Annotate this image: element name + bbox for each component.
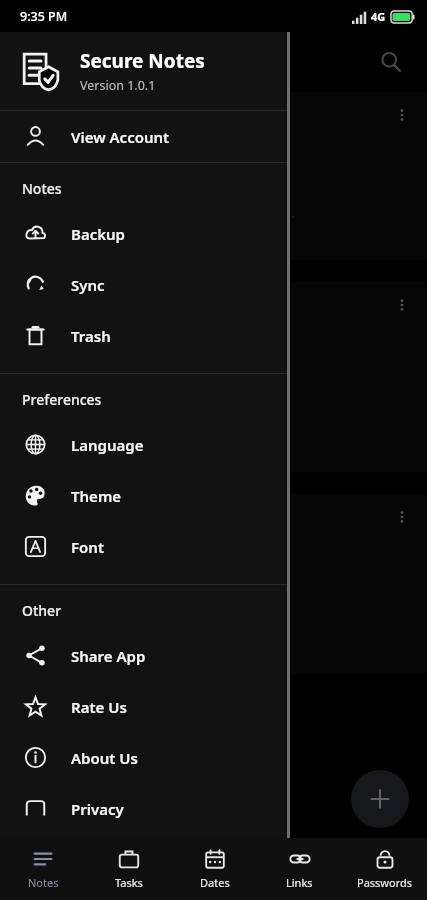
button[interactable]: Theme: [0, 470, 290, 521]
staticText: 9:35 PM: [20, 8, 68, 25]
staticText: reaction. Example: in an: [18, 376, 187, 396]
staticText: Version 1.0.1: [80, 77, 156, 94]
button[interactable]: Dates: [172, 838, 257, 900]
staticText: Passwords: [357, 875, 413, 890]
staticText: electrochemical consisting of: [18, 400, 223, 420]
button[interactable]: View Account: [0, 111, 290, 162]
button[interactable]: Trash: [0, 310, 290, 361]
staticText: Font: [71, 537, 104, 557]
staticText: Trash: [71, 326, 111, 346]
staticText: Privacy: [71, 799, 124, 819]
button[interactable]: Notes: [0, 838, 86, 900]
button[interactable]: Add note: [351, 770, 409, 828]
staticText: Backup: [71, 224, 125, 244]
staticText: Take a deep breath before you start so: [18, 138, 289, 158]
button[interactable]: Rate Us: [0, 681, 290, 732]
button[interactable]: Share App: [0, 630, 290, 681]
button[interactable]: Font: [0, 521, 290, 572]
staticText: Dates: [200, 875, 230, 890]
button[interactable]: Passwords: [342, 838, 427, 900]
button[interactable]: About Us: [0, 732, 290, 783]
staticText: Share App: [71, 646, 146, 666]
staticText: Notes: [22, 179, 62, 198]
staticText: Other: [22, 601, 62, 620]
staticText: A battery in which electric current is: [18, 328, 270, 348]
button[interactable]: Backup: [0, 208, 290, 259]
staticText: name Satoshi. The currency began: [18, 588, 262, 608]
staticText: the moment and whoever you are. Be…: [18, 202, 296, 222]
button[interactable]: More options: [0, 494, 427, 674]
staticText: View Account: [71, 127, 170, 147]
staticText: Bitcoin was invented in 2008 by an: [18, 540, 261, 560]
staticText: use in 2009 when it was releas…: [18, 612, 244, 632]
button[interactable]: More options: [387, 100, 417, 130]
staticText: Language: [71, 435, 144, 455]
staticText: you can focus on what matters per: [18, 178, 263, 198]
button[interactable]: Links: [257, 838, 342, 900]
button[interactable]: Sync: [0, 259, 290, 310]
staticText: Sync: [71, 275, 105, 295]
button[interactable]: Tasks: [86, 838, 172, 900]
staticText: Links: [286, 875, 313, 890]
button[interactable]: Language: [0, 419, 290, 470]
staticText: Secure Notes: [80, 48, 205, 74]
button[interactable]: Search: [369, 40, 413, 84]
staticText: Rate Us: [71, 697, 127, 717]
button[interactable]: Privacy: [0, 783, 290, 834]
button[interactable]: More options: [387, 502, 417, 532]
staticText: About Us: [71, 748, 138, 768]
staticText: electrodes held apart and …: [18, 424, 215, 444]
button[interactable]: More options: [387, 290, 417, 320]
staticText: Notes: [28, 875, 59, 890]
staticText: Tasks: [115, 875, 143, 890]
button[interactable]: More options: [0, 282, 427, 472]
staticText: Preferences: [22, 390, 102, 409]
staticText: 4G: [371, 9, 386, 24]
staticText: Theme: [71, 486, 122, 506]
button[interactable]: More options: [0, 92, 427, 260]
